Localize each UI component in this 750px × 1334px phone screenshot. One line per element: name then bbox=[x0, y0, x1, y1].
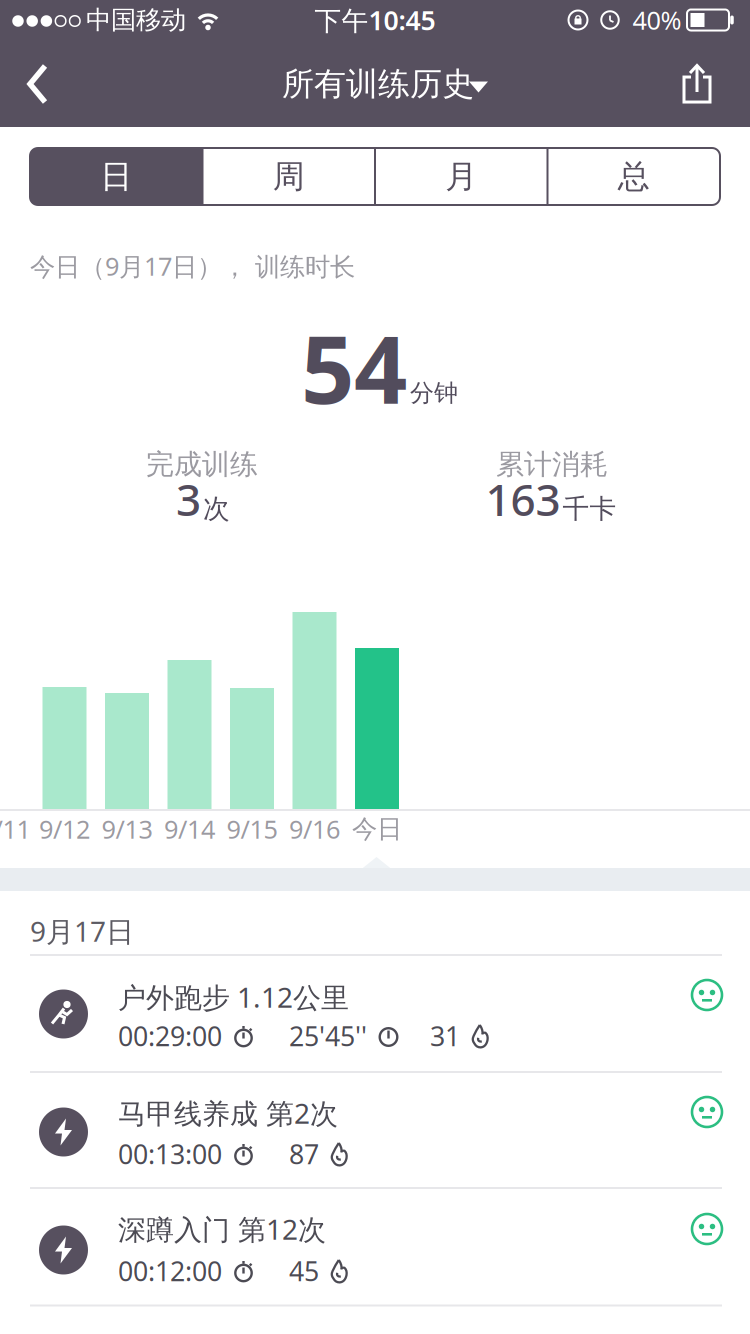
staticText: 分钟 bbox=[410, 378, 458, 408]
staticText: 深蹲入门 第12次 bbox=[118, 1210, 326, 1248]
staticText: 3 bbox=[176, 470, 201, 528]
staticText: 9/15 bbox=[226, 812, 277, 846]
staticText: 25'45'' bbox=[289, 1018, 367, 1054]
staticText: 中国移动 bbox=[86, 4, 186, 35]
staticText: 31 bbox=[430, 1018, 460, 1054]
staticText: 9/12 bbox=[39, 812, 90, 846]
staticText: 总 bbox=[618, 157, 650, 196]
staticText: 完成训练 bbox=[146, 447, 258, 482]
button[interactable]: 周 bbox=[202, 148, 375, 205]
staticText: 下午10:45 bbox=[314, 2, 435, 38]
staticText: 千卡 bbox=[562, 492, 616, 525]
staticText: 163 bbox=[485, 470, 560, 528]
staticText: 00:13:00 bbox=[118, 1136, 222, 1172]
staticText: 所有训练历史 bbox=[282, 64, 474, 104]
staticText: 周 bbox=[273, 157, 305, 196]
button[interactable] bbox=[680, 62, 714, 106]
staticText: 月 bbox=[445, 157, 477, 196]
button[interactable]: 马甲线养成 第2次 bbox=[0, 1072, 750, 1188]
staticText: 9/14 bbox=[164, 812, 215, 846]
staticText: 00:29:00 bbox=[118, 1018, 222, 1054]
staticText: 户外跑步 1.12公里 bbox=[118, 978, 349, 1016]
staticText: 00:12:00 bbox=[118, 1253, 222, 1289]
staticText: 马甲线养成 第2次 bbox=[118, 1094, 338, 1132]
staticText: 54 bbox=[301, 305, 407, 429]
staticText: 9月17日 bbox=[30, 912, 134, 950]
button[interactable] bbox=[23, 61, 53, 107]
button[interactable]: 所有训练历史 bbox=[258, 59, 488, 109]
button[interactable]: 月 bbox=[375, 148, 547, 205]
staticText: 9/16 bbox=[289, 812, 340, 846]
staticText: 9/13 bbox=[101, 812, 152, 846]
staticText: 45 bbox=[289, 1253, 319, 1289]
button[interactable]: 深蹲入门 第12次 bbox=[0, 1188, 750, 1305]
staticText: 累计消耗 bbox=[496, 447, 608, 482]
button[interactable]: 户外跑步 1.12公里 bbox=[0, 955, 750, 1072]
staticText: 次 bbox=[203, 492, 230, 525]
staticText: 今日（9月17日）， 训练时长 bbox=[30, 249, 355, 283]
staticText: 9/11 bbox=[0, 812, 30, 846]
staticText: 日 bbox=[100, 157, 132, 196]
staticText: 今日 bbox=[352, 813, 402, 844]
staticText: 87 bbox=[289, 1136, 319, 1172]
button[interactable]: 总 bbox=[547, 148, 720, 205]
staticText: 40% bbox=[632, 3, 681, 37]
button[interactable]: 日 bbox=[30, 148, 202, 205]
